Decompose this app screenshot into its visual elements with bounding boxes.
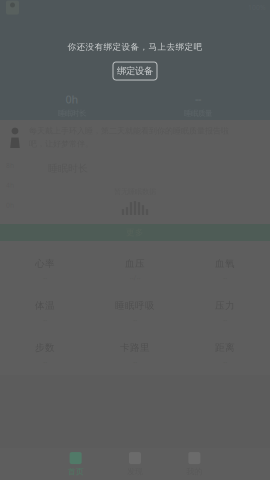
staticText: 卡路里 (120, 341, 150, 354)
staticText: 睡眠呼吸 (115, 299, 155, 312)
button[interactable]: 我的 (165, 448, 224, 480)
staticText: 血氧 (215, 257, 235, 270)
staticText: 距离 (215, 341, 235, 354)
staticText: 绑定设备 (117, 65, 153, 77)
staticText: -- (195, 92, 201, 106)
staticText: 体温 (35, 299, 55, 312)
staticText: 步数 (35, 341, 55, 354)
staticText: 0h (65, 92, 78, 106)
staticText: 心率 (35, 257, 55, 270)
button[interactable]: Profile (6, 0, 19, 14)
button[interactable]: 首页 (46, 448, 105, 480)
button[interactable]: 发现 (105, 448, 165, 480)
staticText: 血压 (125, 257, 145, 270)
staticText: 首页 (68, 467, 84, 476)
staticText: 压力 (215, 299, 235, 312)
staticText: 你还没有绑定设备，马上去绑定吧 (67, 42, 202, 52)
button[interactable]: 绑定设备 (113, 62, 157, 80)
